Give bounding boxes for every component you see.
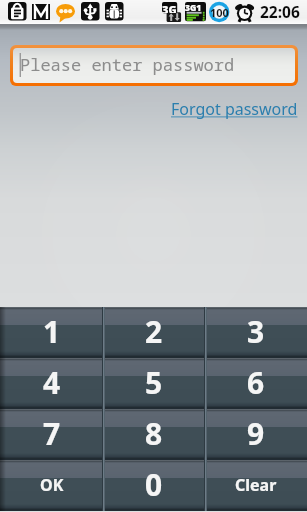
button[interactable]: 6: [205, 358, 307, 409]
button[interactable]: 3: [205, 307, 307, 358]
staticText: 6: [247, 362, 265, 403]
staticText: Please enter password: [20, 53, 235, 76]
staticText: 9: [247, 413, 265, 454]
staticText: 0: [145, 464, 163, 505]
staticText: 3G1X: [185, 2, 206, 12]
staticText: 3G: [162, 2, 177, 13]
staticText: Clear: [235, 474, 277, 496]
button[interactable]: Clear: [205, 460, 307, 511]
staticText: 5: [145, 362, 163, 403]
staticText: Forgot password: [171, 98, 298, 119]
button[interactable]: OK: [0, 460, 103, 511]
button[interactable]: 8: [103, 409, 205, 460]
button[interactable]: 1: [0, 307, 103, 358]
staticText: 8: [145, 413, 163, 454]
button[interactable]: 5: [103, 358, 205, 409]
staticText: 2: [145, 311, 163, 352]
staticText: 22:06: [260, 1, 300, 22]
button[interactable]: 0: [103, 460, 205, 511]
staticText: 100: [210, 5, 229, 20]
button[interactable]: 9: [205, 409, 307, 460]
button[interactable]: 2: [103, 307, 205, 358]
staticText: 1: [43, 311, 61, 352]
staticText: 3: [247, 311, 265, 352]
button[interactable]: 4: [0, 358, 103, 409]
staticText: OK: [40, 474, 64, 496]
button[interactable]: 7: [0, 409, 103, 460]
staticText: 7: [43, 413, 61, 454]
staticText: 4: [43, 362, 61, 403]
button[interactable]: Please enter password: [10, 45, 298, 86]
button[interactable]: Forgot password: [160, 98, 298, 119]
